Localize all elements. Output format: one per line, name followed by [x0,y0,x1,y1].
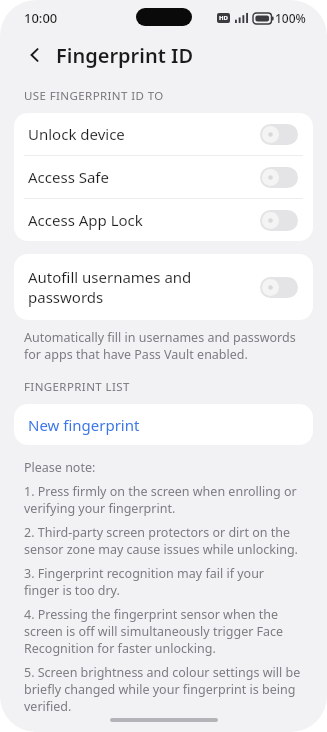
staticText: 4. Pressing the fingerprint sensor when … [24,606,301,657]
staticText: Access App Lock [28,210,143,230]
staticText: Access Safe [28,167,109,187]
button[interactable]: New fingerprint [14,404,313,445]
staticText: 1. Press firmly on the screen when enrol… [24,483,301,517]
button[interactable]: Access Safe [14,156,313,198]
staticText: Fingerprint ID [56,42,194,69]
button[interactable]: Unlock device [14,113,313,155]
staticText: Please note: [24,459,96,476]
button[interactable]: Toggle off [260,124,298,145]
staticText: Automatically fill in usernames and pass… [24,329,301,363]
staticText: 2. Third-party screen protectors or dirt… [24,524,301,558]
button[interactable]: Toggle off [260,167,298,188]
button[interactable]: Autofill usernames and passwords [14,254,313,320]
staticText: HD [219,14,228,22]
staticText: 5. Screen brightness and colour settings… [24,664,301,715]
staticText: 3. Fingerprint recognition may fail if y… [24,565,301,599]
staticText: Unlock device [28,124,125,144]
button[interactable]: Toggle off [260,277,298,298]
staticText: 10:00 [24,9,58,27]
staticText: FINGERPRINT LIST [24,379,130,395]
staticText: Autofill usernames and passwords [28,267,208,307]
button[interactable]: Access App Lock [14,199,313,241]
staticText: USE FINGERPRINT ID TO [24,88,164,104]
button[interactable]: Back [22,42,48,68]
staticText: 100% [275,10,306,26]
button[interactable]: Toggle off [260,210,298,231]
staticText: New fingerprint [28,415,140,435]
